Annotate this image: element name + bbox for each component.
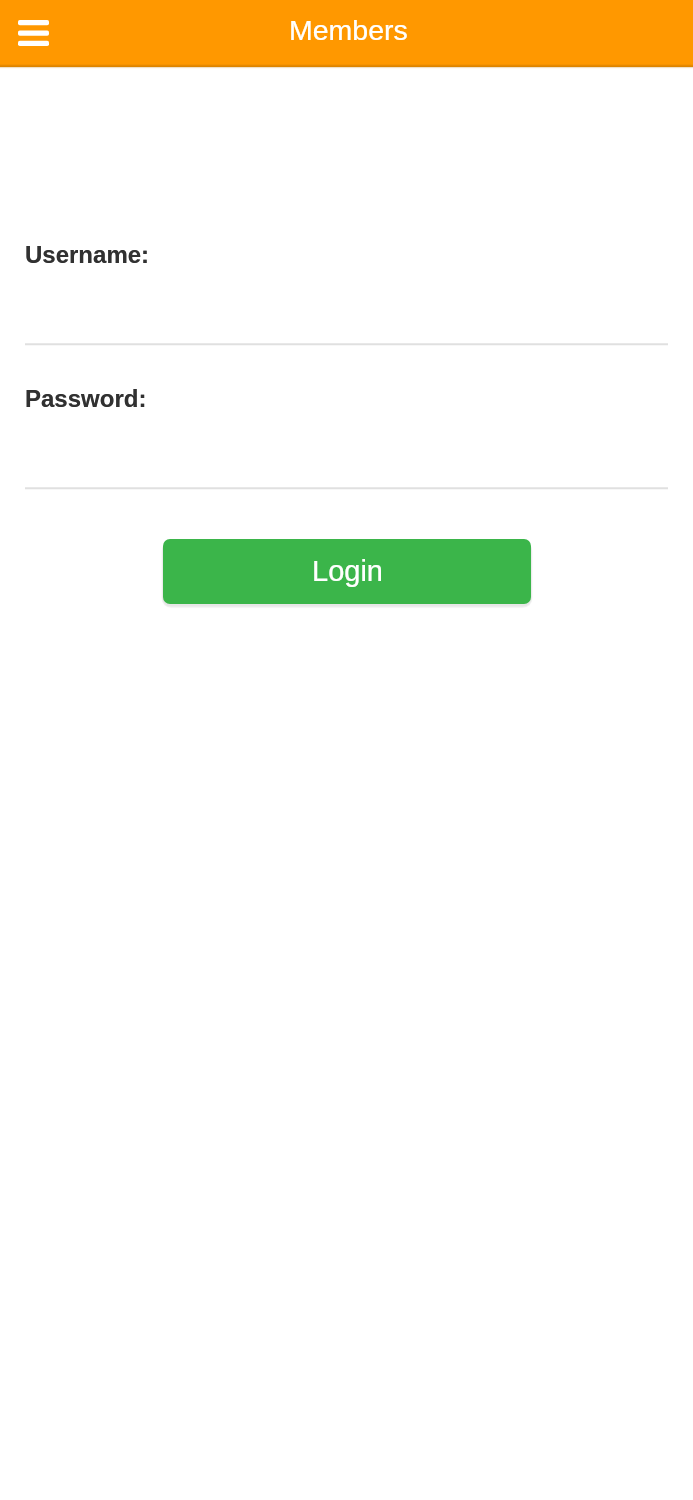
button[interactable]: Username: — [25, 240, 668, 345]
staticText: Password: — [25, 385, 147, 412]
staticText: Username: — [25, 241, 150, 268]
staticText: Username: — [25, 241, 150, 268]
staticText: Login — [312, 555, 383, 587]
staticText: Password: — [25, 385, 147, 412]
button[interactable]: Login — [163, 539, 531, 604]
button[interactable]: Open navigation menu — [9, 9, 57, 57]
button[interactable]: Password: — [25, 384, 668, 489]
staticText: Members — [289, 14, 408, 46]
